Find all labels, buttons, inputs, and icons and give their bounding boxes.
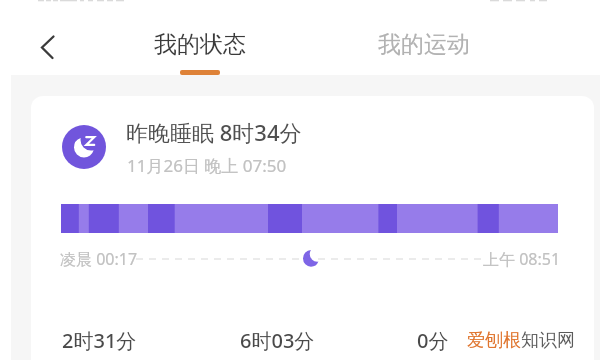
staticText: 6时03分 [240, 327, 315, 354]
staticText: 爱刨根知识网 [467, 329, 575, 352]
button[interactable]: 我的状态 [138, 30, 262, 75]
staticText: 2时31分 [62, 327, 137, 354]
staticText: 我的状态 [154, 30, 246, 59]
staticText: 0分 [417, 327, 449, 354]
button[interactable]: 我的运动 [362, 30, 486, 59]
button[interactable]: Back [26, 25, 70, 69]
staticText: 凌晨 00:17 [60, 248, 138, 270]
staticText: 昨晚睡眠 8时34分 [126, 117, 302, 147]
staticText: 11月26日 晚上 07:50 [127, 154, 287, 177]
button[interactable]: 昨晚睡眠 8时34分 [31, 96, 594, 360]
staticText: 上午 08:51 [483, 248, 561, 270]
staticText: 我的运动 [378, 30, 470, 59]
